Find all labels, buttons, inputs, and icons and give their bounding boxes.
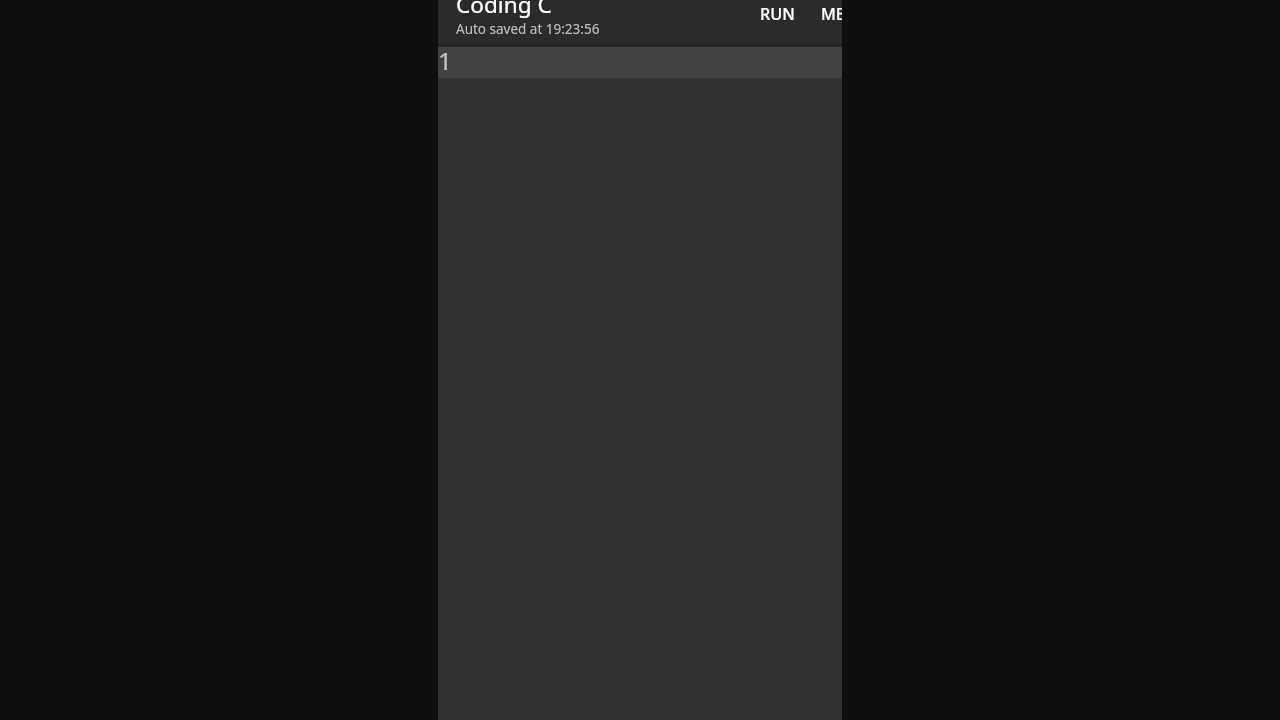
staticText: 1: [438, 44, 452, 75]
button[interactable]: Code editor: [438, 47, 842, 720]
staticText: Coding C: [456, 0, 552, 20]
staticText: RUN: [760, 3, 795, 25]
staticText: Auto saved at 19:23:56: [456, 20, 600, 38]
button[interactable]: MENU: [808, 0, 842, 33]
button[interactable]: RUN: [747, 0, 808, 33]
staticText: MENU: [821, 3, 842, 25]
